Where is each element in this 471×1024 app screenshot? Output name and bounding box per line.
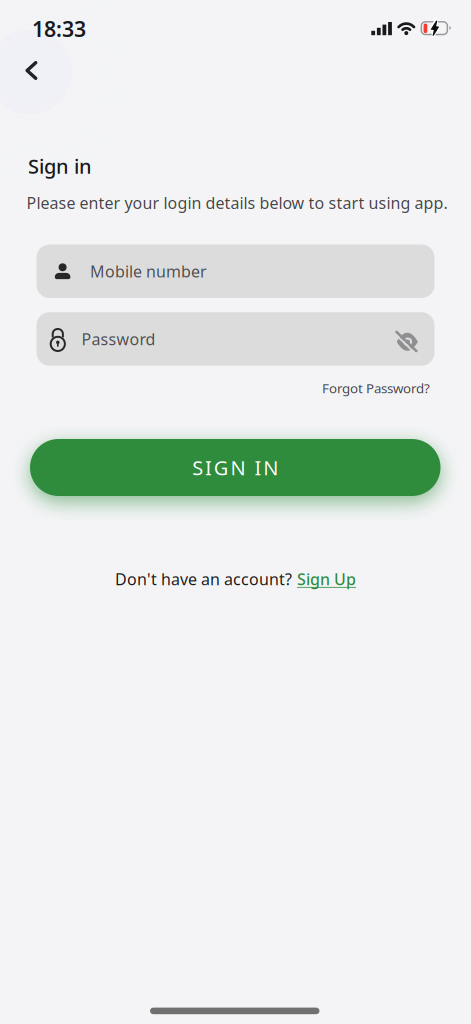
button[interactable]: Mobile number	[36, 244, 434, 298]
staticText: Forgot Password?	[322, 379, 430, 397]
button[interactable]: S	[30, 439, 440, 496]
staticText: Sign in	[28, 153, 92, 179]
staticText: 18:33	[32, 14, 86, 43]
staticText: N	[263, 454, 278, 481]
staticText: I	[205, 454, 212, 481]
button[interactable]: Show password	[387, 321, 427, 361]
button[interactable]: Back	[9, 48, 53, 92]
staticText: Please enter your login details below to…	[26, 192, 447, 213]
staticText: Password	[81, 328, 155, 349]
staticText: I	[254, 454, 261, 481]
staticText: Mobile number	[90, 261, 207, 282]
button[interactable]: Forgot Password?	[322, 379, 430, 397]
button[interactable]: Password	[36, 312, 434, 366]
staticText: N	[230, 454, 245, 481]
staticText: Sign Up	[297, 568, 356, 590]
staticText: Don't have an account?	[115, 568, 292, 590]
staticText: S	[192, 454, 203, 481]
staticText: G	[214, 454, 229, 481]
button[interactable]: Sign Up	[297, 568, 356, 590]
